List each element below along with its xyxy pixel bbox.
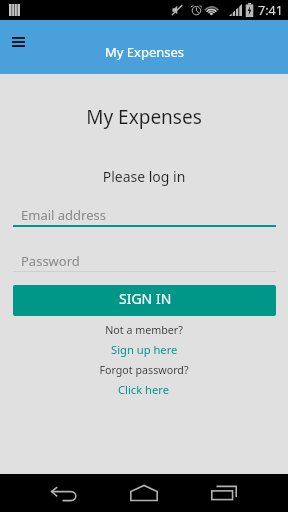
staticText: My Expenses xyxy=(0,104,288,130)
button[interactable]: Recent apps xyxy=(204,474,244,512)
button[interactable]: Home xyxy=(124,474,164,512)
button[interactable]: Back xyxy=(44,474,84,512)
button[interactable]: SIGN IN xyxy=(13,285,276,316)
button[interactable]: Sign up here xyxy=(0,342,288,357)
staticText: Click here xyxy=(118,382,170,397)
staticText: Password xyxy=(21,252,80,270)
staticText: Email address xyxy=(21,206,106,224)
staticText: Not a member? xyxy=(0,323,288,338)
staticText: My Expenses xyxy=(105,43,185,61)
button[interactable]: Open navigation menu xyxy=(4,28,32,56)
staticText: Sign up here xyxy=(111,342,178,357)
staticText: Forgot password? xyxy=(0,363,288,378)
button[interactable]: Click here xyxy=(0,382,288,397)
staticText: 7:41 xyxy=(258,2,283,19)
staticText: Please log in xyxy=(0,167,288,186)
staticText: SIGN IN xyxy=(119,289,172,308)
